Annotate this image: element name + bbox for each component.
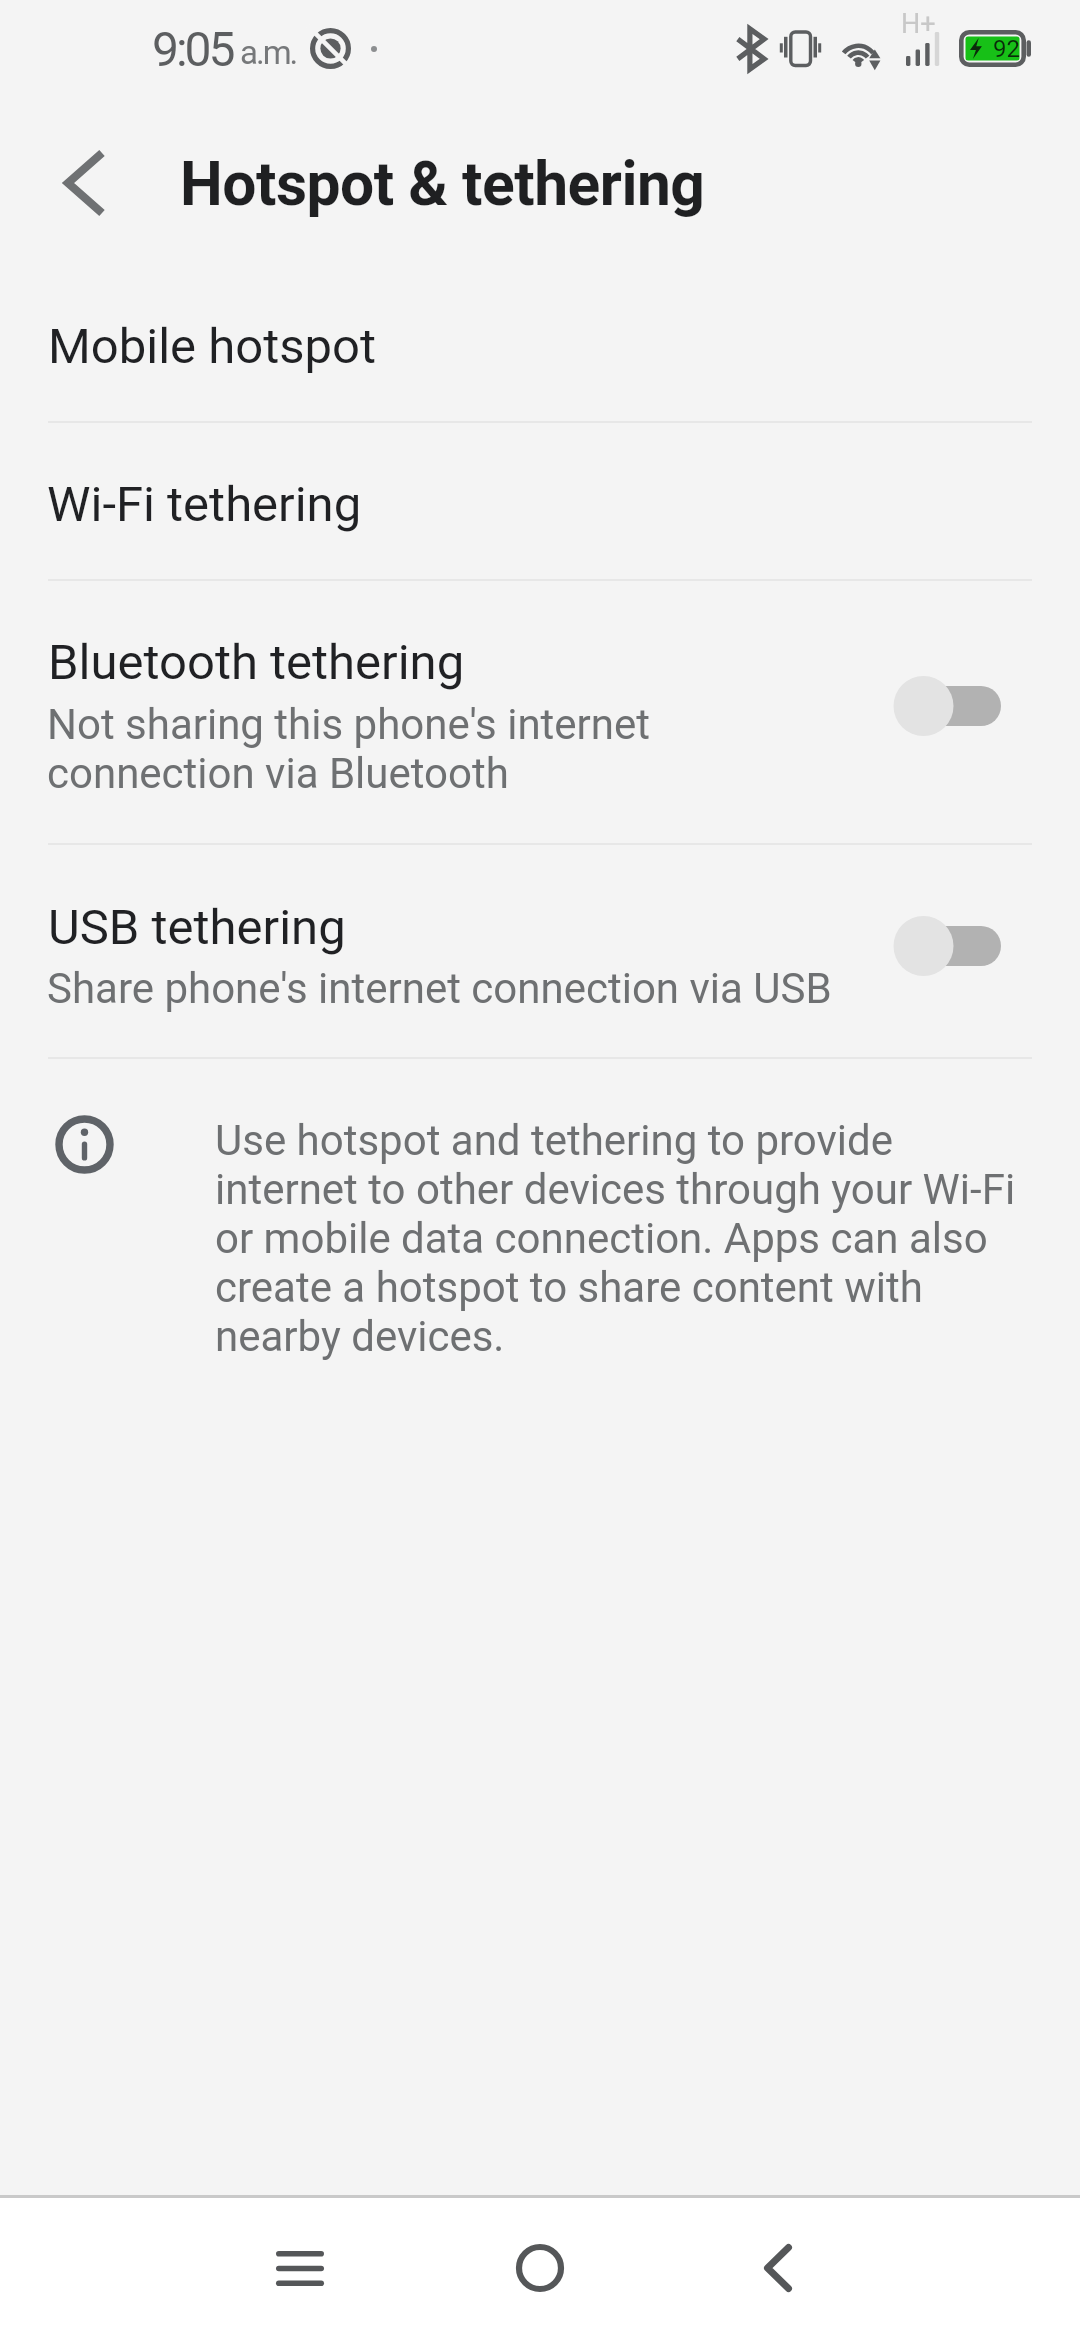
button[interactable]: USB tethering bbox=[0, 845, 1080, 1058]
staticText: a.m. bbox=[240, 33, 297, 72]
staticText: H+ bbox=[901, 8, 936, 40]
button[interactable]: Toggle switch, off bbox=[874, 906, 1024, 986]
button[interactable]: Toggle switch, off bbox=[874, 666, 1024, 746]
staticText: Not sharing this phone's internet connec… bbox=[47, 700, 651, 798]
staticText: 9:05 bbox=[152, 21, 233, 77]
button[interactable]: Wi-Fi tethering bbox=[0, 423, 1080, 580]
button[interactable]: Home bbox=[480, 2208, 600, 2328]
button[interactable]: Mobile hotspot bbox=[0, 262, 1080, 422]
staticText: Mobile hotspot bbox=[48, 318, 376, 375]
button[interactable]: Navigate up bbox=[26, 124, 144, 242]
staticText: Share phone's internet connection via US… bbox=[47, 964, 832, 1013]
staticText: Use hotspot and tethering to provide int… bbox=[215, 1116, 1016, 1361]
button[interactable]: Recent apps bbox=[240, 2208, 360, 2328]
button[interactable]: Back bbox=[718, 2208, 838, 2328]
staticText: Hotspot & tethering bbox=[180, 149, 705, 220]
staticText: Wi-Fi tethering bbox=[47, 476, 362, 533]
button[interactable]: Bluetooth tethering bbox=[0, 581, 1080, 844]
staticText: Bluetooth tethering bbox=[48, 634, 465, 691]
staticText: USB tethering bbox=[48, 899, 346, 956]
staticText: 92 bbox=[993, 35, 1020, 63]
